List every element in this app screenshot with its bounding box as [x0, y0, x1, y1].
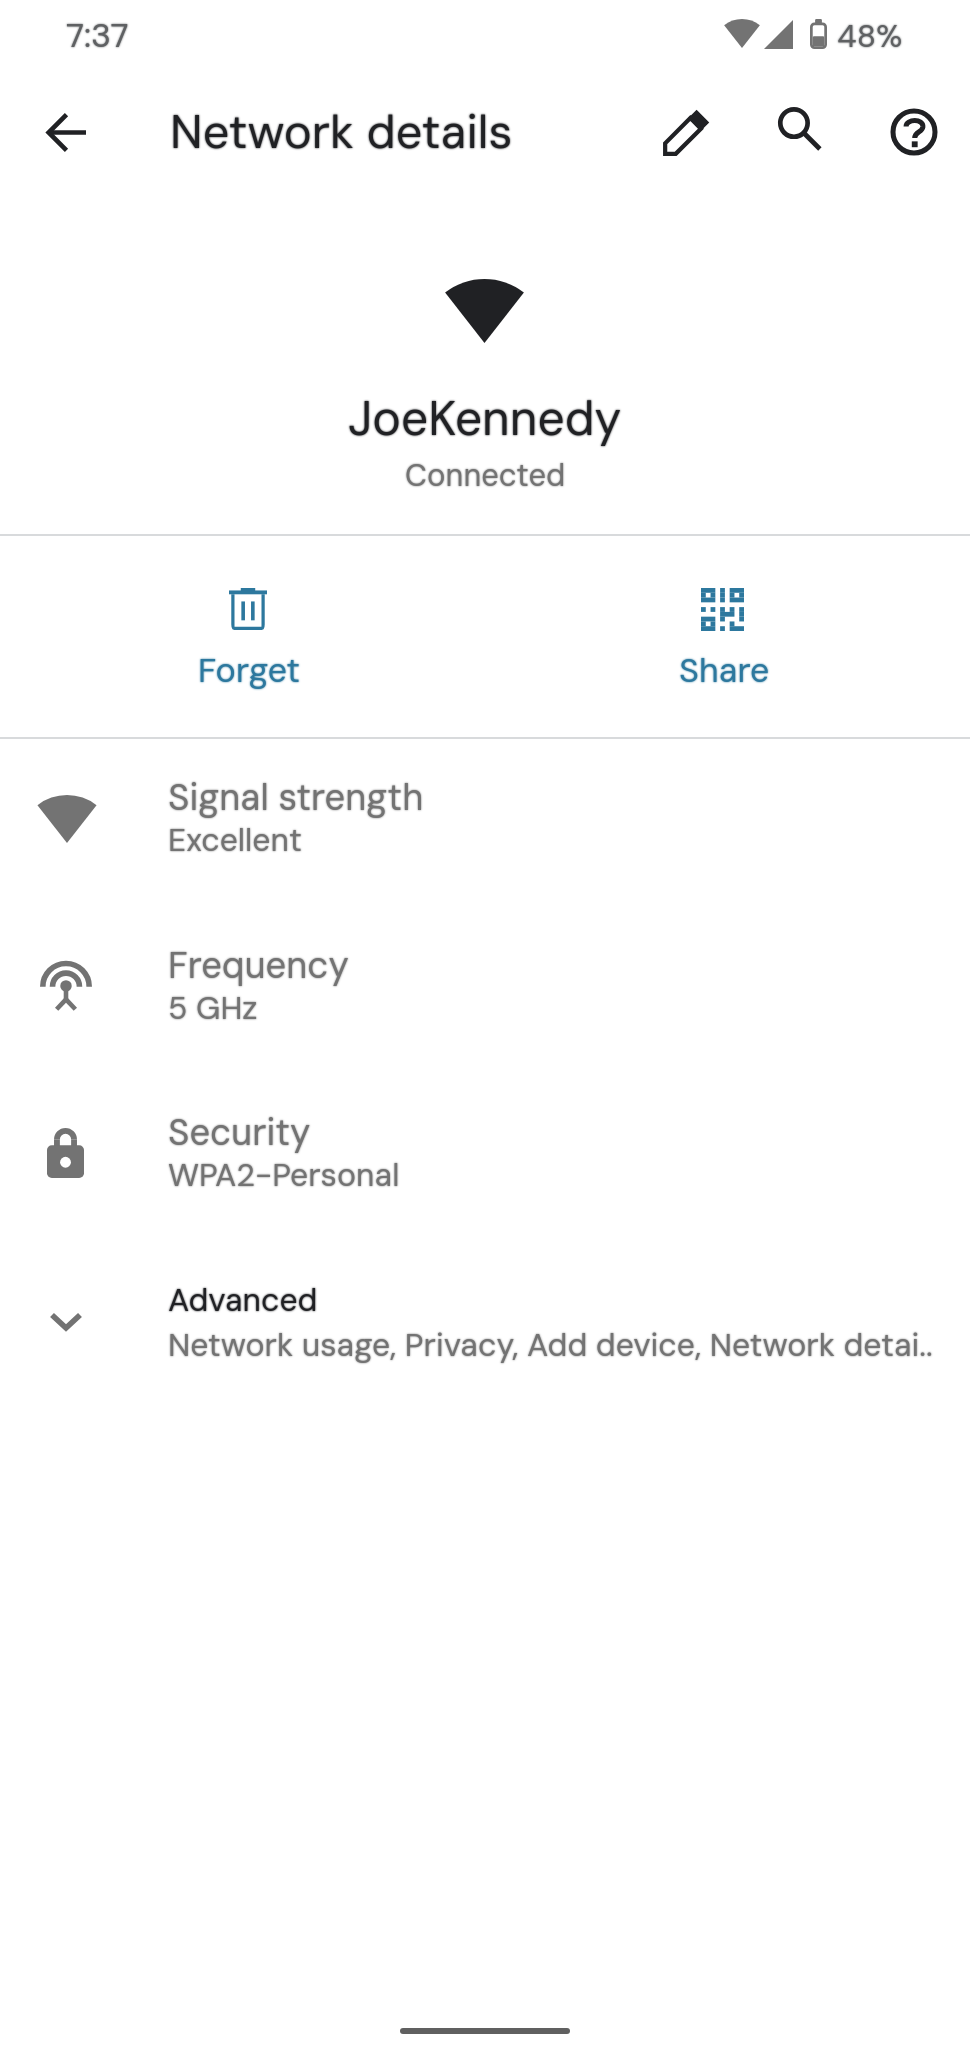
staticText: Network details: [170, 101, 513, 162]
staticText: Forget: [198, 648, 301, 692]
staticText: 7:37: [66, 14, 129, 58]
staticText: Share: [679, 648, 770, 692]
button[interactable]: Search: [751, 83, 847, 179]
staticText: 5 GHz: [168, 987, 258, 1029]
staticText: Security: [168, 1109, 311, 1157]
button[interactable]: Back: [26, 92, 106, 172]
staticText: 48%: [837, 15, 903, 57]
button[interactable]: Security: [0, 1072, 970, 1240]
button[interactable]: Advanced: [0, 1240, 970, 1408]
staticText: WPA2-Personal: [168, 1154, 400, 1196]
button[interactable]: Edit: [639, 84, 735, 180]
staticText: Network usage, Privacy, Add device, Netw…: [168, 1324, 933, 1366]
staticText: Excellent: [168, 819, 302, 861]
button[interactable]: Forget: [6, 536, 482, 737]
staticText: JoeKennedy: [348, 387, 622, 449]
button[interactable]: Frequency: [0, 905, 970, 1073]
staticText: Connected: [405, 455, 566, 495]
button[interactable]: Share: [488, 536, 964, 737]
button[interactable]: Signal strength: [0, 737, 970, 905]
staticText: Advanced: [168, 1279, 318, 1321]
button[interactable]: Help: [866, 84, 962, 180]
staticText: Signal strength: [168, 774, 424, 822]
staticText: Frequency: [168, 942, 349, 990]
